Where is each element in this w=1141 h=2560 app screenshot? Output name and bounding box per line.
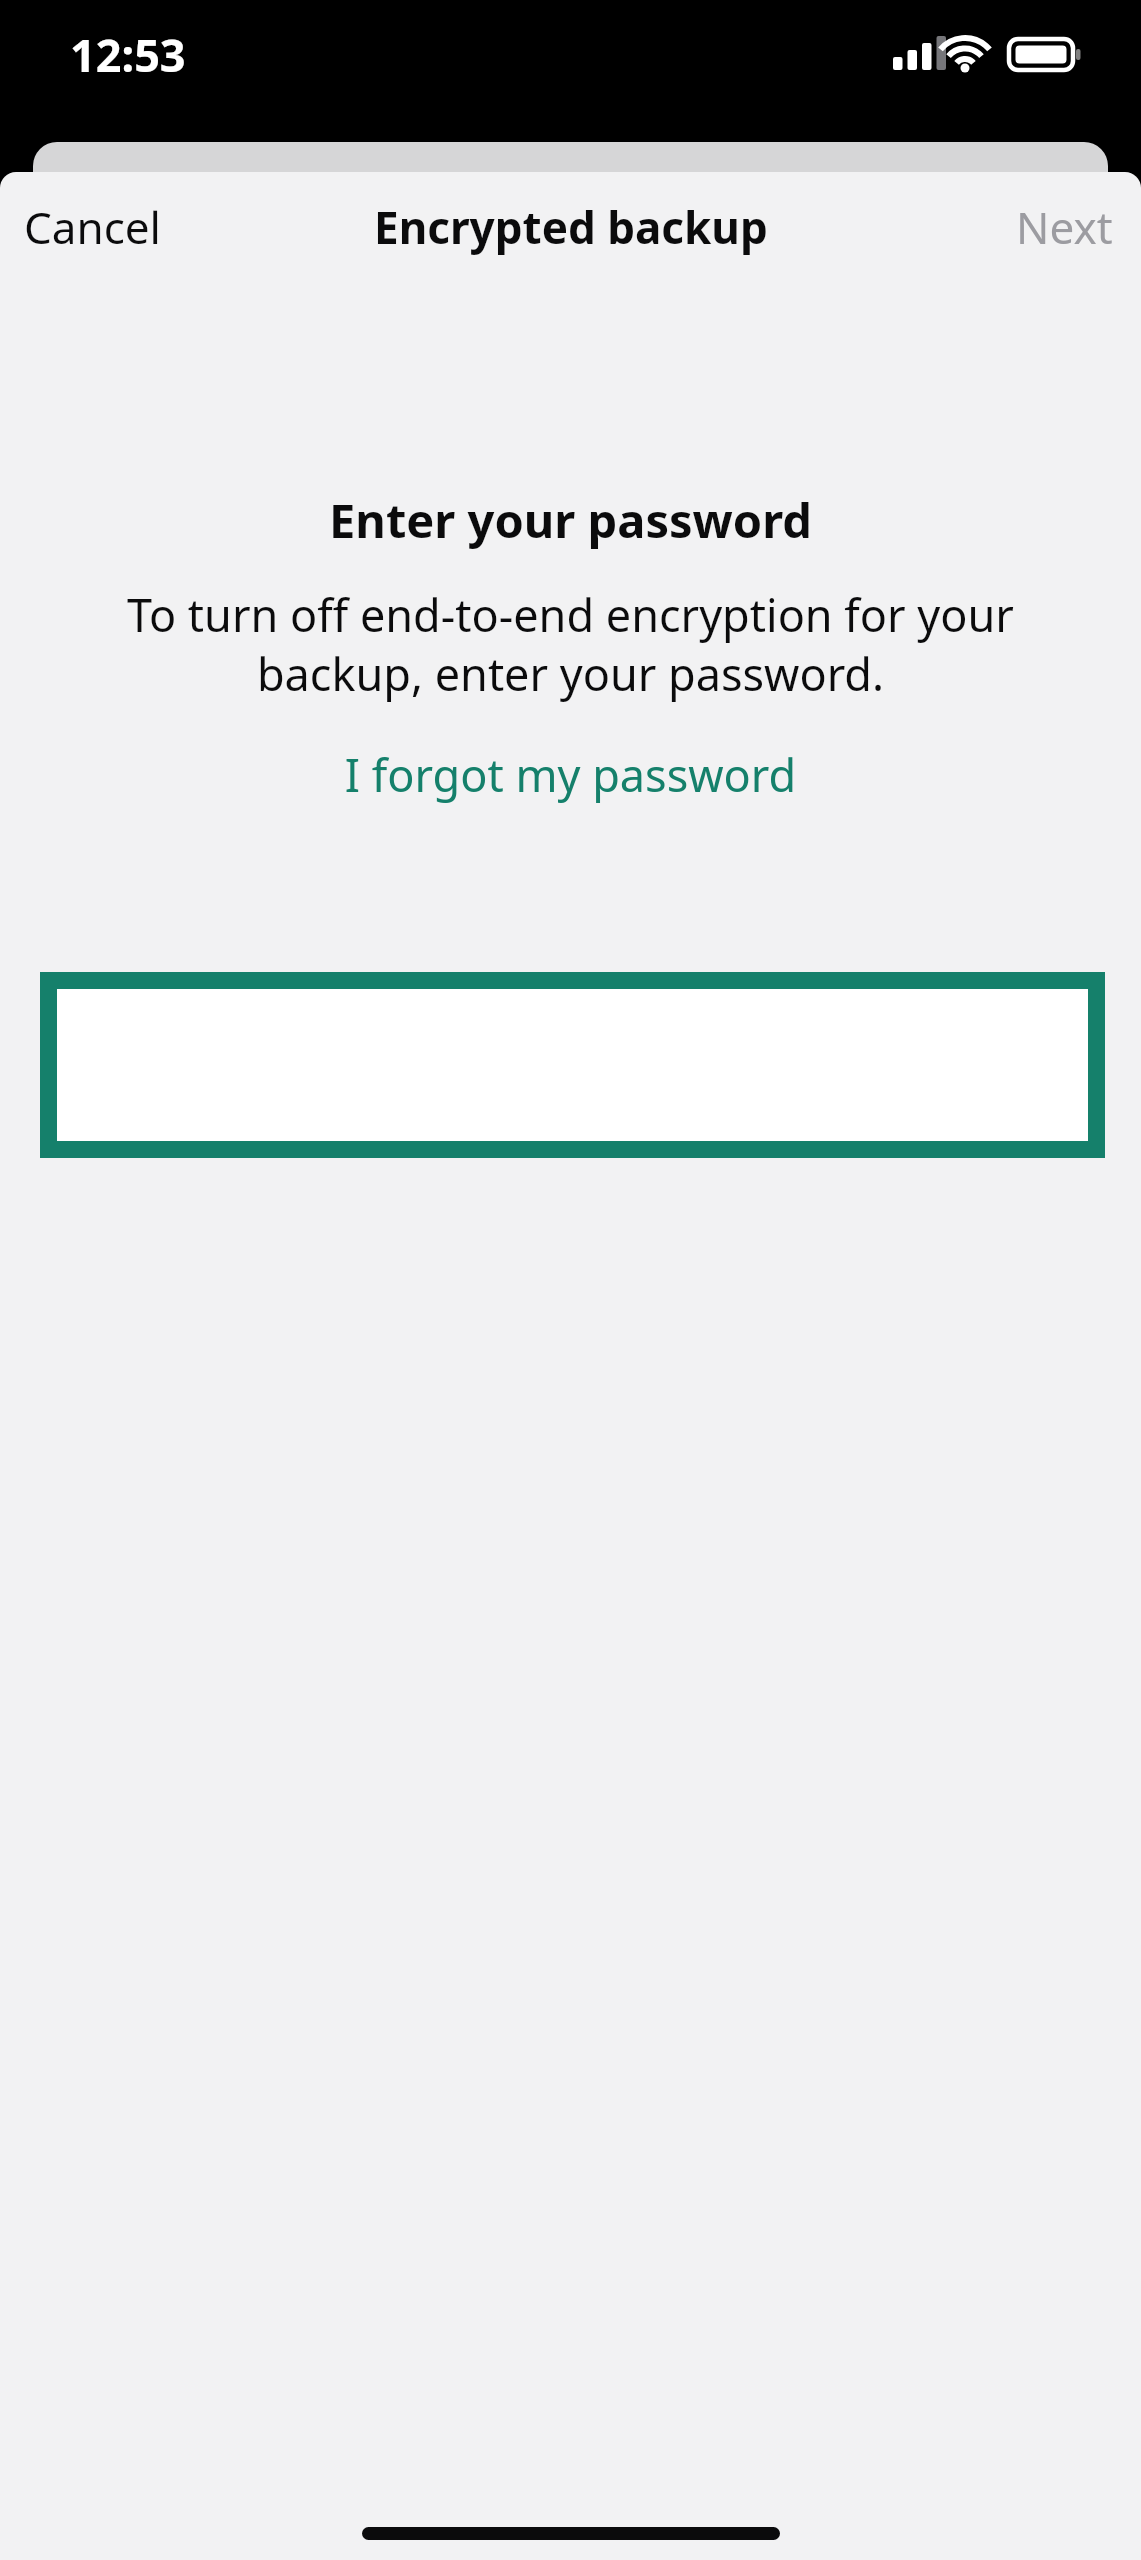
- staticText: Enter your password: [0, 488, 1141, 552]
- staticText: To turn off end-to-end encryption for yo…: [58, 584, 1083, 704]
- staticText: Encrypted backup: [374, 197, 768, 257]
- button[interactable]: Cancel: [0, 183, 177, 271]
- button[interactable]: I forgot my password: [0, 744, 1141, 805]
- staticText: Next: [1016, 197, 1113, 257]
- staticText: 12:53: [70, 24, 186, 85]
- staticText: Cancel: [24, 197, 161, 257]
- button[interactable]: Next: [1000, 183, 1141, 271]
- staticText: I forgot my password: [0, 744, 1141, 805]
